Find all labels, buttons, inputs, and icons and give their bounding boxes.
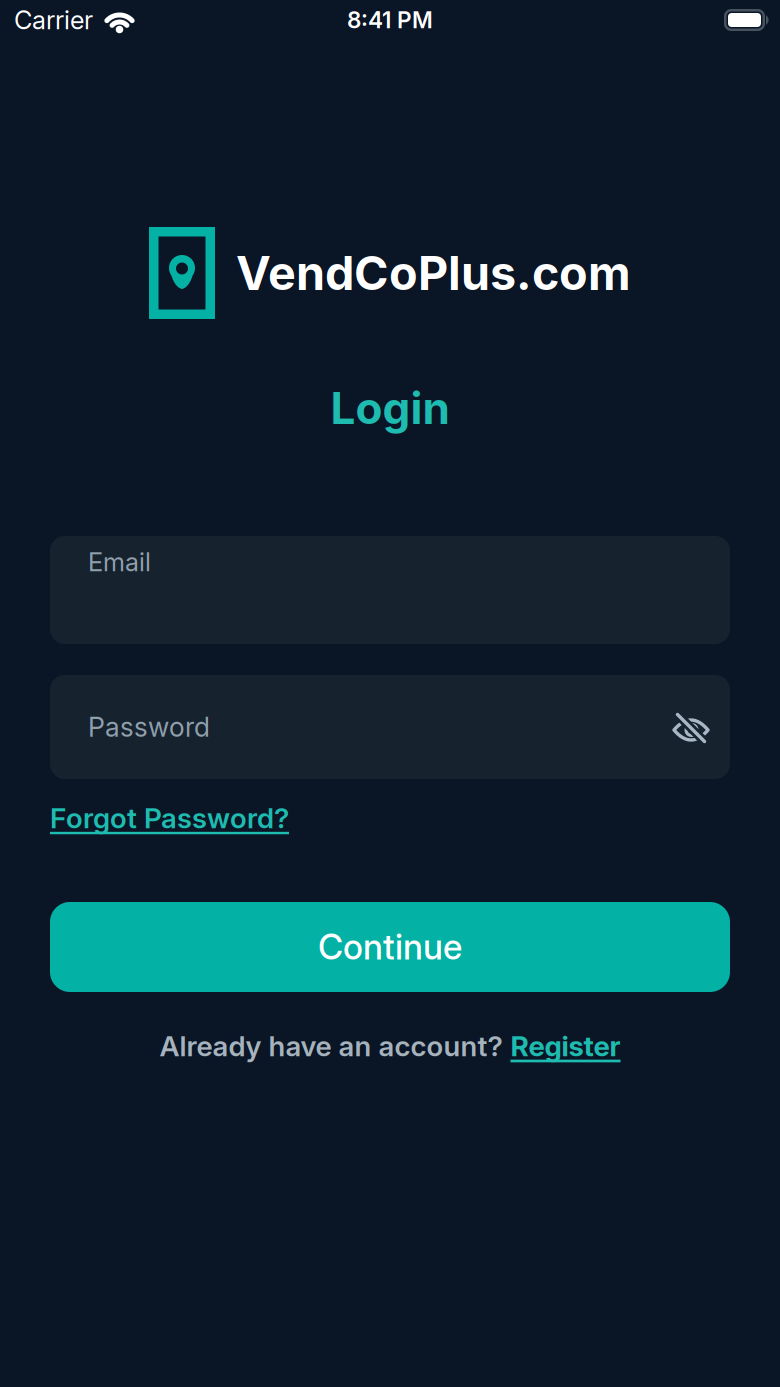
button[interactable]: Show password [671,713,711,747]
staticText: Register [510,1029,620,1062]
staticText: Password [88,711,210,743]
staticText: Login [330,382,449,434]
staticText: Continue [318,927,462,967]
button[interactable]: Forgot Password? [50,801,289,834]
button[interactable]: Continue [50,902,730,992]
button[interactable]: Register [510,1029,620,1062]
staticText: Forgot Password? [50,801,289,834]
staticText: VendCoPlus.com [236,245,631,301]
button[interactable]: Email [50,536,730,644]
staticText: Carrier [14,5,93,35]
staticText: 8:41 PM [347,7,433,33]
button[interactable]: Password [50,675,730,779]
staticText: Email [88,547,151,577]
staticText: Already have an account? [159,1029,502,1062]
